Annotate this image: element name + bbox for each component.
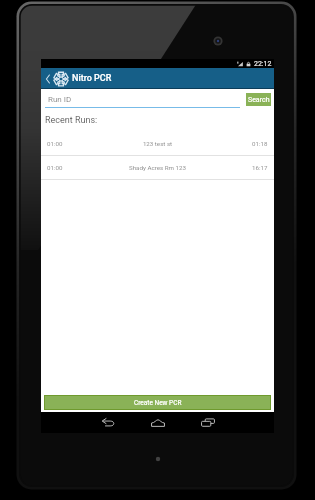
- staticText: 01:00: [47, 164, 63, 171]
- staticText: 123 test st: [63, 140, 252, 147]
- staticText: 01:18: [252, 140, 268, 147]
- staticText: Nitro PCR: [72, 73, 112, 84]
- staticText: 01:00: [47, 140, 63, 147]
- staticText: 22:12: [254, 60, 272, 68]
- button[interactable]: Back: [97, 412, 119, 433]
- staticText: Search: [248, 96, 270, 104]
- button[interactable]: Run ID: [45, 92, 240, 108]
- staticText: 16:17: [252, 164, 268, 171]
- button[interactable]: Search: [246, 93, 271, 106]
- staticText: Recent Runs:: [45, 115, 98, 126]
- button[interactable]: 01:00: [41, 132, 274, 155]
- button[interactable]: 01:00: [41, 156, 274, 179]
- button[interactable]: Navigate up: [42, 68, 54, 89]
- button[interactable]: Create New PCR: [45, 396, 270, 409]
- staticText: Shady Acres Rm 123: [63, 164, 252, 171]
- button[interactable]: Recent apps: [197, 412, 219, 433]
- staticText: Run ID: [48, 95, 72, 104]
- staticText: Create New PCR: [134, 399, 182, 407]
- button[interactable]: Home: [147, 412, 169, 433]
